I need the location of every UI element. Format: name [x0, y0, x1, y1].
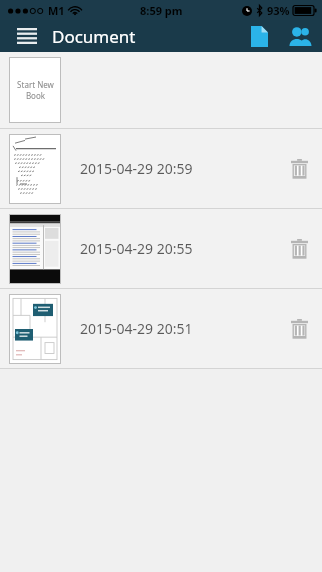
staticText: M1	[48, 3, 65, 18]
staticText: 93%	[267, 3, 290, 18]
button[interactable]: 2015-04-29 20:59	[0, 129, 322, 208]
button[interactable]: Delete document	[276, 219, 322, 279]
button[interactable]: 2015-04-29 20:51	[0, 289, 322, 368]
staticText: 2015-04-29 20:51	[80, 319, 193, 338]
button[interactable]: Open navigation menu	[10, 21, 44, 51]
staticText: 8:59 pm	[140, 3, 183, 18]
staticText: 2015-04-29 20:59	[80, 159, 193, 178]
button[interactable]: New document	[240, 20, 278, 52]
staticText: Start New Book	[17, 79, 54, 101]
staticText: 2015-04-29 20:55	[80, 239, 193, 258]
button[interactable]: Contacts	[278, 20, 322, 52]
button[interactable]: Start New Book	[9, 57, 61, 123]
button[interactable]: 2015-04-29 20:55	[0, 209, 322, 288]
button[interactable]: Delete document	[276, 139, 322, 199]
staticText: Document	[52, 25, 136, 48]
button[interactable]: Delete document	[276, 299, 322, 359]
